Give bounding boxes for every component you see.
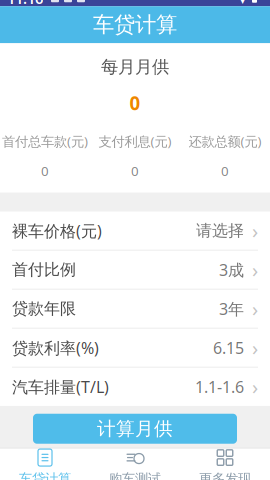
staticText: 请选择 bbox=[196, 221, 244, 241]
staticText: 首付总车款(元) bbox=[2, 132, 88, 150]
staticText: 汽车排量(T/L) bbox=[12, 376, 109, 397]
staticText: 1.1-1.6 bbox=[195, 376, 244, 397]
staticText: 购车测试 bbox=[109, 471, 161, 480]
staticText: › bbox=[252, 217, 258, 244]
staticText: › bbox=[252, 373, 258, 400]
staticText: 计算月供 bbox=[97, 417, 173, 440]
staticText: › bbox=[252, 295, 258, 322]
staticText: › bbox=[252, 334, 258, 361]
button[interactable]: 更多发现 bbox=[180, 449, 270, 480]
staticText: 还款总额(元) bbox=[188, 132, 261, 150]
staticText: 支付利息(元) bbox=[98, 132, 171, 150]
staticText: 更多发现 bbox=[199, 471, 251, 480]
staticText: 0 bbox=[41, 162, 49, 180]
staticText: 车贷计算 bbox=[93, 12, 177, 38]
button[interactable]: 贷款年限 bbox=[0, 290, 270, 329]
button[interactable]: 计算月供 bbox=[0, 414, 270, 444]
staticText: 贷款利率(%) bbox=[12, 337, 99, 358]
button[interactable]: 车贷计算 bbox=[0, 449, 90, 480]
staticText: 0 bbox=[131, 162, 139, 180]
staticText: 0 bbox=[221, 162, 229, 180]
staticText: 11:16 bbox=[7, 0, 43, 8]
button[interactable]: 裸车价格(元) bbox=[0, 212, 270, 251]
button[interactable]: 购车测试 bbox=[90, 449, 180, 480]
staticText: 3成 bbox=[219, 259, 244, 280]
staticText: 车贷计算 bbox=[19, 471, 71, 480]
button[interactable]: 首付比例 bbox=[0, 251, 270, 290]
button[interactable]: 贷款利率(%) bbox=[0, 329, 270, 368]
staticText: 裸车价格(元) bbox=[12, 220, 102, 241]
staticText: 贷款年限 bbox=[12, 299, 76, 319]
staticText: 每月月供 bbox=[101, 56, 169, 78]
staticText: 0 bbox=[129, 90, 140, 115]
staticText: › bbox=[252, 256, 258, 283]
button[interactable]: 汽车排量(T/L) bbox=[0, 368, 270, 406]
staticText: 6.15 bbox=[213, 337, 244, 358]
staticText: 首付比例 bbox=[12, 260, 76, 280]
staticText: ▼ bbox=[238, 0, 247, 5]
staticText: 3年 bbox=[219, 298, 244, 319]
